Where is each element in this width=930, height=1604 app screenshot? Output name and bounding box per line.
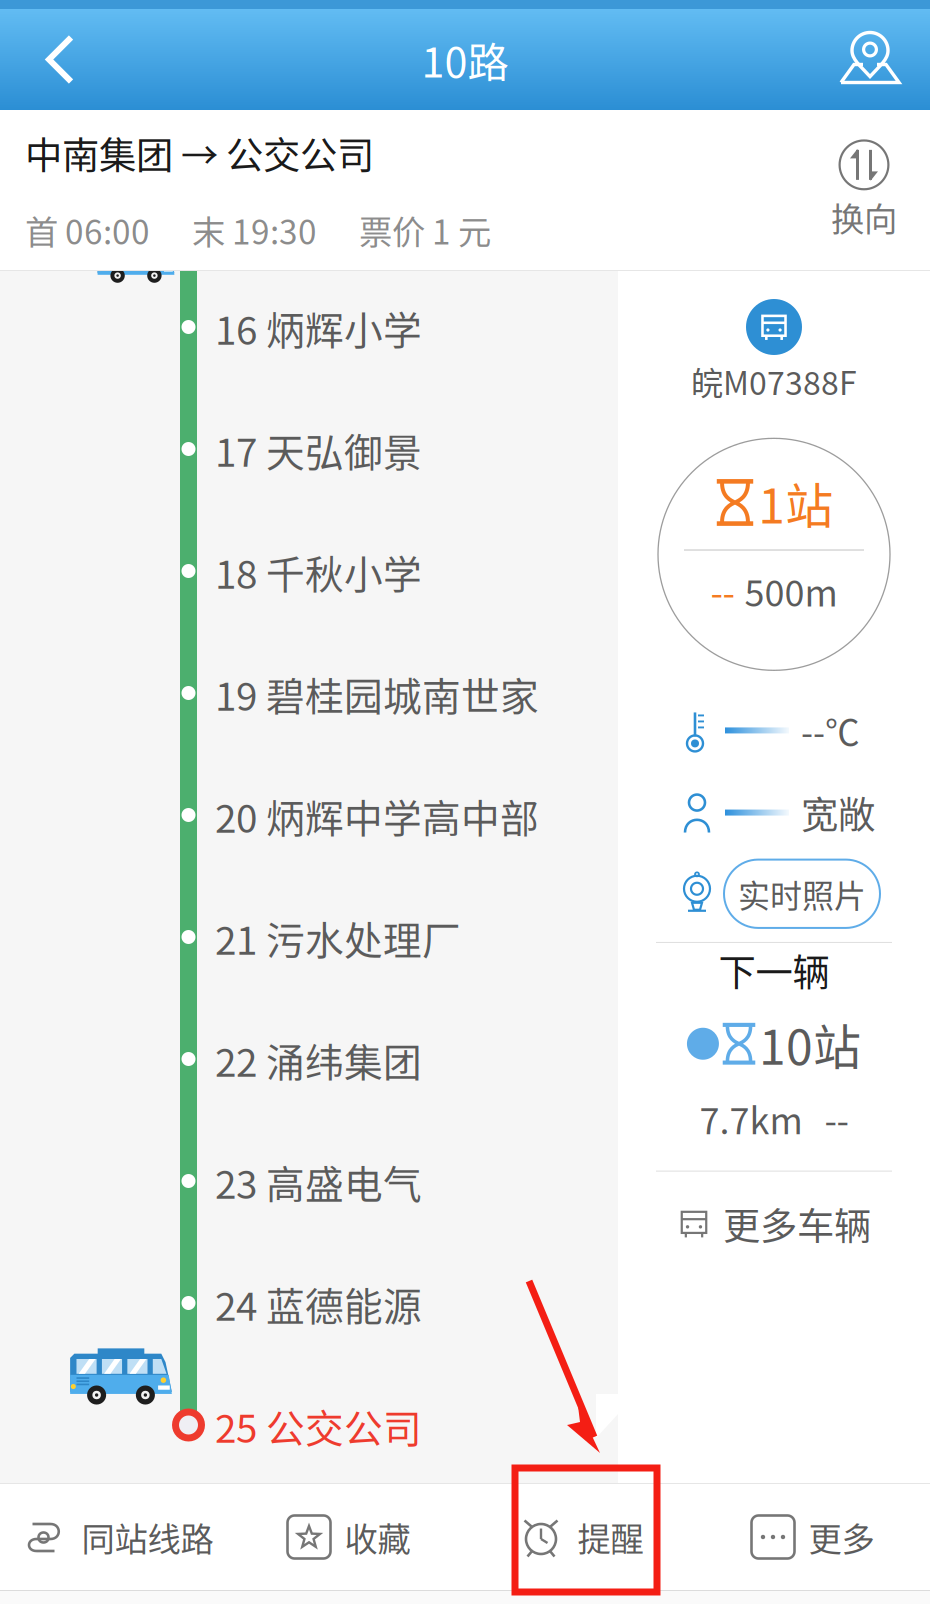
staticText: -- — [710, 565, 734, 617]
staticText: 换向 — [831, 193, 897, 241]
button[interactable]: 收藏 — [233, 1484, 465, 1590]
staticText: 提醒 — [577, 1513, 643, 1561]
staticText: 中南集团 → 公交公司 — [25, 126, 374, 180]
staticText: 实时照片 — [738, 871, 866, 917]
staticText: 7.7km — [699, 1092, 802, 1145]
staticText: 皖M07388F — [691, 358, 857, 404]
staticText: 10路 — [421, 30, 508, 89]
button[interactable]: 地图 — [810, 9, 930, 110]
staticText: 票价 1 元 — [359, 206, 491, 254]
staticText: 22 涌纬集团 — [215, 1032, 422, 1088]
staticText: 更多 — [808, 1513, 874, 1561]
staticText: 21 污水处理厂 — [215, 910, 461, 966]
staticText: 19 碧桂园城南世家 — [215, 666, 539, 722]
staticText: 同站线路 — [81, 1513, 213, 1561]
staticText: 首 06:00 — [25, 206, 150, 254]
staticText: 500m — [744, 565, 837, 617]
button[interactable]: 返回 — [0, 9, 120, 110]
staticText: 1站 — [758, 468, 833, 537]
button[interactable]: 更多车辆 — [677, 1172, 871, 1267]
button[interactable]: 同站线路 — [1, 1484, 233, 1590]
staticText: -- — [824, 1092, 848, 1145]
staticText: 末 19:30 — [192, 206, 317, 254]
staticText: 17 天弘御景 — [215, 422, 422, 478]
staticText: 收藏 — [344, 1513, 410, 1561]
staticText: --℃ — [801, 705, 860, 755]
staticText: 25 公交公司 — [215, 1398, 422, 1454]
button[interactable]: 提醒 — [465, 1484, 697, 1590]
staticText: 24 蓝德能源 — [215, 1276, 422, 1332]
staticText: 宽敞 — [801, 785, 875, 840]
staticText: 18 千秋小学 — [215, 544, 422, 600]
staticText: 16 炳辉小学 — [215, 300, 422, 356]
staticText: 20 炳辉中学高中部 — [215, 788, 539, 844]
button[interactable]: 换向 — [798, 116, 930, 264]
staticText: 10站 — [759, 1009, 861, 1078]
staticText: 下一辆 — [718, 943, 829, 997]
button[interactable]: 更多 — [697, 1484, 929, 1590]
staticText: 更多车辆 — [723, 1197, 871, 1251]
staticText: 23 高盛电气 — [215, 1154, 422, 1210]
button[interactable]: 实时照片 — [724, 860, 880, 928]
